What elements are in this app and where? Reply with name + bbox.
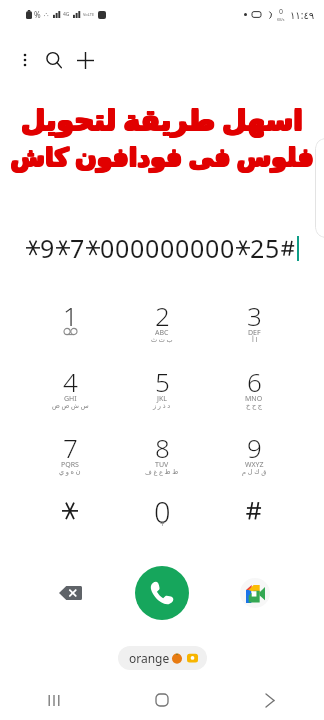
button[interactable]: 9 bbox=[208, 430, 300, 496]
staticText: ‎١١‎:‎٤٩ bbox=[290, 8, 315, 22]
staticText: ب ت ث bbox=[151, 335, 173, 344]
staticText: 1 bbox=[63, 298, 78, 333]
staticText: % bbox=[34, 9, 41, 20]
staticText: KB/s bbox=[277, 17, 285, 22]
staticText: اسهل طريقة لتحويل bbox=[22, 100, 304, 138]
staticText: اسهل طريقة لتحويل bbox=[21, 99, 303, 137]
staticText: 7 bbox=[63, 430, 78, 465]
staticText: GHI bbox=[64, 394, 77, 404]
staticText: ق ك ل م bbox=[242, 467, 267, 476]
staticText: س ش ص ض bbox=[52, 401, 89, 410]
staticText: 4G bbox=[63, 11, 70, 18]
staticText: 4 bbox=[63, 364, 78, 399]
button[interactable]: Backspace bbox=[53, 576, 87, 610]
button[interactable]: 5 bbox=[116, 364, 208, 430]
staticText: ABC bbox=[155, 328, 169, 338]
button[interactable]: 6 bbox=[208, 364, 300, 430]
button[interactable]: 7 bbox=[24, 430, 116, 496]
staticText: 0 bbox=[115, 231, 130, 265]
staticText: 2 bbox=[250, 231, 265, 265]
staticText: 0 bbox=[175, 231, 190, 265]
button[interactable]: More options bbox=[11, 46, 39, 74]
button[interactable]: Video call bbox=[240, 578, 270, 608]
staticText: فلوس فى فودافون كاش bbox=[11, 138, 315, 172]
staticText: WXYZ bbox=[245, 460, 264, 470]
staticText: ا أ bbox=[252, 335, 258, 344]
staticText: 0 bbox=[205, 231, 220, 265]
staticText: TUV bbox=[155, 460, 169, 470]
staticText: 0 bbox=[130, 231, 145, 265]
staticText: 0 bbox=[145, 231, 160, 265]
staticText: فلوس فى فودافون كاش bbox=[9, 139, 313, 173]
staticText: 3 bbox=[247, 298, 262, 333]
staticText: 8 bbox=[155, 430, 170, 465]
staticText: 7 bbox=[70, 231, 85, 265]
staticText: 0 bbox=[100, 231, 115, 265]
button[interactable]: 0 bbox=[116, 496, 208, 562]
button[interactable]: 1 bbox=[24, 298, 116, 364]
staticText: فلوس فى فودافون كاش bbox=[10, 138, 314, 172]
button[interactable]: Recents bbox=[34, 680, 74, 720]
button[interactable]: Back bbox=[250, 680, 290, 720]
staticText: فلوس فى فودافون كاش bbox=[11, 140, 315, 174]
button[interactable]: 3 bbox=[208, 298, 300, 364]
staticText: 0 bbox=[154, 492, 171, 531]
staticText: اسهل طريقة لتحويل bbox=[21, 100, 303, 138]
staticText: orange bbox=[129, 650, 170, 666]
staticText: 9 bbox=[247, 430, 262, 465]
staticText: فلوس فى فودافون كاش bbox=[10, 139, 314, 173]
staticText: د ذ ر ز bbox=[153, 401, 171, 410]
staticText: 0 bbox=[220, 231, 235, 265]
staticText: اسهل طريقة لتحويل bbox=[20, 101, 302, 139]
staticText: 6 bbox=[247, 364, 262, 399]
staticText: ∴ bbox=[44, 11, 49, 19]
staticText: ج ح خ bbox=[246, 401, 262, 410]
staticText: 5 bbox=[265, 231, 280, 265]
staticText: 5 bbox=[155, 364, 170, 399]
staticText: DEF bbox=[248, 328, 261, 338]
staticText: VoLTE bbox=[83, 12, 95, 17]
button[interactable]: 4 bbox=[24, 364, 116, 430]
staticText: فلوس فى فودافون كاش bbox=[9, 140, 313, 174]
button[interactable]: 2 bbox=[116, 298, 208, 364]
button[interactable]: Search bbox=[40, 46, 68, 74]
staticText: JKL bbox=[157, 394, 167, 404]
staticText: PQRS bbox=[61, 460, 79, 470]
staticText: فلوس فى فودافون كاش bbox=[10, 140, 314, 174]
staticText: ط ظ ع غ ف bbox=[145, 467, 179, 476]
button[interactable]: Home bbox=[142, 680, 182, 720]
button[interactable]: 8 bbox=[116, 430, 208, 496]
staticText: 0 bbox=[190, 231, 205, 265]
staticText: اسهل طريقة لتحويل bbox=[21, 101, 303, 139]
button[interactable]: Add contact bbox=[71, 46, 99, 74]
staticText: فلوس فى فودافون كاش bbox=[9, 138, 313, 172]
staticText: 9 bbox=[40, 231, 55, 265]
staticText: MNO bbox=[245, 394, 263, 404]
button[interactable]: Call bbox=[135, 566, 189, 620]
staticText: ن ه و ي bbox=[59, 467, 81, 476]
staticText: اسهل طريقة لتحويل bbox=[20, 99, 302, 137]
staticText: 0 bbox=[279, 7, 284, 17]
staticText: 2 bbox=[155, 298, 170, 333]
staticText: + bbox=[160, 518, 165, 529]
button[interactable] bbox=[208, 496, 300, 562]
button[interactable]: orange bbox=[118, 646, 207, 670]
staticText: اسهل طريقة لتحويل bbox=[22, 99, 304, 137]
staticText: اسهل طريقة لتحويل bbox=[20, 100, 302, 138]
button[interactable] bbox=[24, 496, 116, 562]
staticText: 0 bbox=[160, 231, 175, 265]
staticText: اسهل طريقة لتحويل bbox=[22, 101, 304, 139]
staticText: فلوس فى فودافون كاش bbox=[11, 139, 315, 173]
